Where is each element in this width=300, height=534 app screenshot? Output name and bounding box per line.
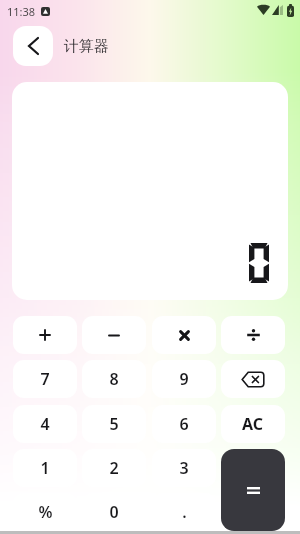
button[interactable]: 4	[13, 405, 77, 443]
staticText: 2	[109, 457, 119, 479]
button[interactable]: 1	[13, 449, 77, 487]
button[interactable]	[13, 316, 77, 354]
staticText: 3	[179, 457, 189, 479]
button[interactable]: Delete	[221, 360, 285, 398]
staticText: 0	[109, 501, 119, 523]
other: Delete	[241, 371, 265, 388]
button[interactable]	[82, 316, 146, 354]
button[interactable]	[152, 316, 216, 354]
staticText: 11:38	[7, 4, 36, 19]
button[interactable]: 3	[152, 449, 216, 487]
button[interactable]	[221, 316, 285, 354]
button[interactable]: Back	[13, 26, 53, 66]
button[interactable]: 5	[82, 405, 146, 443]
staticText: 4	[40, 413, 50, 435]
button[interactable]: .	[152, 493, 216, 531]
staticText: 7	[40, 368, 50, 390]
button[interactable]: %	[13, 493, 77, 531]
button[interactable]: 7	[13, 360, 77, 398]
button[interactable]: 9	[152, 360, 216, 398]
button[interactable]: 0	[82, 493, 146, 531]
button[interactable]: Equals	[221, 449, 285, 531]
staticText: 计算器	[64, 37, 109, 56]
staticText: 5	[109, 413, 119, 435]
button[interactable]: 6	[152, 405, 216, 443]
staticText: %	[38, 501, 53, 523]
button[interactable]: AC	[221, 405, 285, 443]
staticText: 8	[109, 368, 119, 390]
staticText: .	[182, 501, 187, 523]
staticText: 1	[40, 457, 50, 479]
button[interactable]: 8	[82, 360, 146, 398]
staticText: 9	[179, 368, 189, 390]
staticText: AC	[242, 413, 264, 435]
staticText: 6	[179, 413, 189, 435]
button[interactable]: 2	[82, 449, 146, 487]
